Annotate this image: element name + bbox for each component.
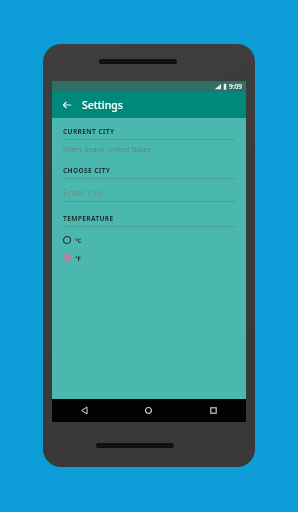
staticText: 9:09	[229, 82, 242, 91]
staticText: ℃	[75, 236, 82, 244]
button[interactable]: ℉	[63, 251, 235, 264]
button[interactable]: Recents	[181, 399, 246, 422]
button[interactable]: Back	[58, 96, 76, 114]
staticText: Miami Beach, United States	[63, 145, 151, 154]
button[interactable]: Back	[52, 399, 116, 422]
button[interactable]: ℃	[63, 233, 235, 246]
staticText: CHOOSE CITY	[63, 166, 111, 175]
staticText: CURRENT CITY	[63, 127, 115, 136]
staticText: ℉	[75, 254, 81, 262]
button[interactable]: Enter city	[63, 185, 235, 199]
staticText: TEMPERATURE	[63, 214, 114, 223]
staticText: Settings	[82, 98, 123, 112]
button[interactable]: Home	[116, 399, 181, 422]
staticText: Enter city	[63, 186, 103, 198]
